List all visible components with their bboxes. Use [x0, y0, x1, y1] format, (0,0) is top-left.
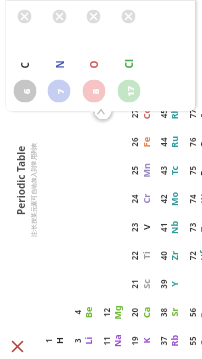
button[interactable]: Remove C: [17, 9, 31, 23]
button[interactable]: Ta: [184, 213, 202, 239]
button[interactable]: Mn: [126, 157, 152, 183]
button[interactable]: Cs: [184, 327, 202, 353]
button[interactable]: K: [126, 327, 152, 353]
button[interactable]: Ca: [126, 299, 152, 325]
button[interactable]: Be: [69, 299, 95, 325]
button[interactable]: Y: [155, 270, 181, 296]
button[interactable]: Close: [6, 336, 27, 357]
button[interactable]: [117, 79, 140, 102]
button[interactable]: Tc: [155, 157, 181, 183]
button[interactable]: Ir: [184, 100, 202, 126]
button[interactable]: [13, 79, 36, 102]
button[interactable]: V: [126, 213, 152, 239]
button[interactable]: Cr: [126, 185, 152, 211]
button[interactable]: Sc: [126, 270, 152, 296]
button[interactable]: Remove N: [52, 9, 66, 23]
button[interactable]: H: [40, 327, 66, 353]
button[interactable]: [82, 79, 105, 102]
button[interactable]: Mg: [98, 299, 124, 325]
button[interactable]: W: [184, 185, 202, 211]
button[interactable]: Remove O: [86, 9, 100, 23]
button[interactable]: Fe: [126, 128, 152, 154]
button[interactable]: Ti: [126, 242, 152, 268]
button[interactable]: Ru: [155, 128, 181, 154]
button[interactable]: Os: [184, 128, 202, 154]
button[interactable]: Na: [98, 327, 124, 353]
button[interactable]: Hf: [184, 242, 202, 268]
button[interactable]: [47, 79, 70, 102]
button[interactable]: Li: [69, 327, 95, 353]
button[interactable]: Collapse panel: [90, 101, 111, 122]
button[interactable]: Zr: [155, 242, 181, 268]
button[interactable]: Nb: [155, 213, 181, 239]
button[interactable]: Re: [184, 157, 202, 183]
button[interactable]: Rb: [155, 327, 181, 353]
button[interactable]: Co: [126, 100, 152, 126]
button[interactable]: Ba: [184, 299, 202, 325]
button[interactable]: Remove Cl: [121, 9, 135, 23]
button[interactable]: Sr: [155, 299, 181, 325]
button[interactable]: Mo: [155, 185, 181, 211]
button[interactable]: Rh: [155, 100, 181, 126]
